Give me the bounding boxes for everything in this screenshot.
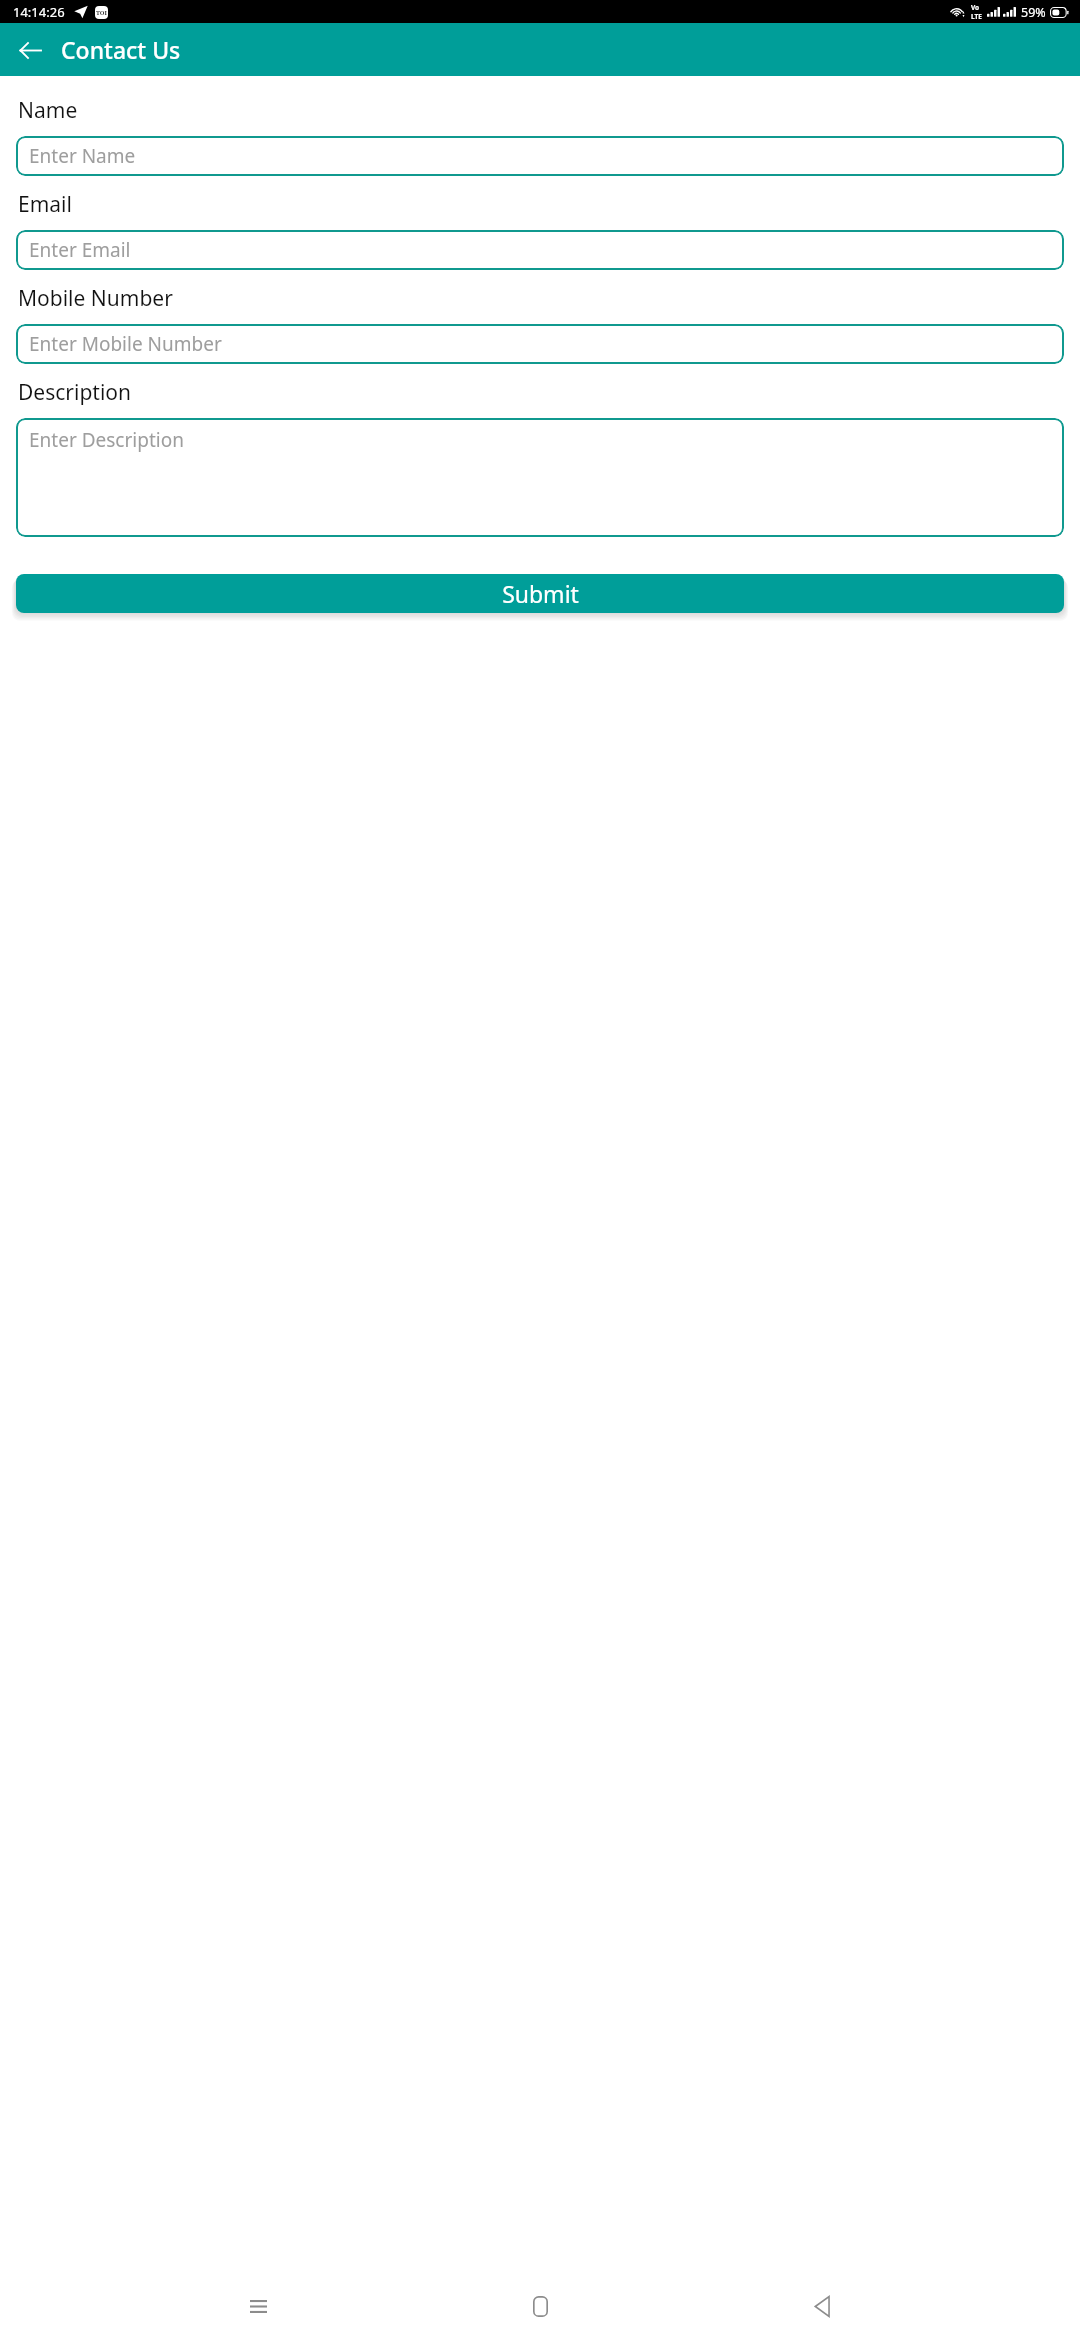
button[interactable]: Enter Email	[16, 230, 1064, 270]
staticText: Enter Name	[29, 143, 136, 169]
button[interactable]: Enter Name	[16, 136, 1064, 176]
staticText: 59%	[1021, 4, 1046, 21]
staticText: Description	[18, 378, 132, 407]
staticText: Contact Us	[61, 34, 181, 65]
button[interactable]: Enter Description	[16, 418, 1064, 537]
button[interactable]: Home	[516, 2282, 564, 2330]
button[interactable]: Recent apps	[234, 2282, 282, 2330]
staticText: Enter Description	[29, 427, 184, 453]
button[interactable]: Back	[798, 2282, 846, 2330]
staticText: Submit	[502, 578, 579, 609]
staticText: Vo	[971, 3, 980, 12]
staticText: Mobile Number	[18, 284, 173, 313]
staticText: Enter Mobile Number	[29, 331, 222, 357]
staticText: Email	[18, 190, 72, 219]
staticText: 14:14:26	[13, 3, 65, 21]
staticText: Name	[18, 96, 78, 125]
staticText: TOI	[96, 9, 107, 17]
button[interactable]: Enter Mobile Number	[16, 324, 1064, 364]
button[interactable]: Back	[6, 26, 54, 74]
staticText: LTE	[971, 12, 982, 21]
button[interactable]: Submit	[16, 574, 1064, 613]
staticText: Enter Email	[29, 237, 131, 263]
